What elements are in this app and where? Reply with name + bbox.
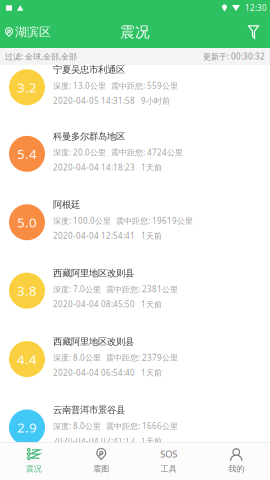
button[interactable]: 3.8	[0, 268, 270, 336]
staticText: 深度: 100.0公里	[53, 215, 111, 226]
staticText: 西藏阿里地区改则县	[53, 336, 134, 347]
staticText: 4.4	[17, 350, 37, 368]
staticText: 震中距您: 4724公里	[111, 147, 183, 158]
staticText: SOS	[160, 448, 177, 460]
staticText: 过滤: 全球,全部,全部	[5, 51, 77, 62]
staticText: 震图	[93, 464, 109, 474]
staticText: 云南普洱市景谷县	[53, 404, 125, 416]
staticText: 阿根廷	[53, 199, 80, 210]
button[interactable]: 湖滨区	[0, 16, 57, 48]
staticText: 1天前	[141, 436, 162, 446]
staticText: 深度: 13.0公里	[53, 80, 106, 91]
staticText: 科曼多尔群岛地区	[53, 131, 125, 142]
staticText: 3.2	[17, 78, 37, 96]
button[interactable]: 震图	[67, 443, 135, 480]
staticText: 2020-04-04 14:18:23	[53, 162, 135, 173]
staticText: 更新于: 00:30:32	[203, 51, 265, 62]
staticText: 1天前	[141, 367, 162, 378]
button[interactable]: 5.4	[0, 131, 270, 199]
button[interactable]: 2.9	[0, 405, 270, 473]
button[interactable]: 筛选	[240, 16, 270, 48]
staticText: 震中距您: 1666公里	[106, 421, 178, 431]
staticText: 3.8	[17, 282, 37, 299]
staticText: 震中距您: 19619公里	[116, 215, 193, 226]
staticText: 深度: 8.0公里	[53, 421, 101, 431]
staticText: 2020-04-04 08:45:50	[53, 299, 135, 309]
staticText: 宁夏吴忠市利通区	[53, 64, 125, 75]
staticText: 5.4	[17, 145, 37, 163]
staticText: 2.9	[17, 419, 37, 436]
staticText: 深度: 8.0公里	[53, 352, 101, 363]
staticText: 西藏阿里地区改则县	[53, 267, 134, 279]
staticText: 12:30	[245, 3, 267, 13]
staticText: 震况	[120, 23, 150, 41]
staticText: 震中距您: 559公里	[111, 80, 178, 91]
staticText: 2020-04-04 02:41:12	[53, 436, 135, 446]
staticText: 震中距您: 2379公里	[106, 352, 178, 363]
button[interactable]: 我的	[202, 443, 270, 480]
staticText: 5.0	[17, 213, 37, 231]
staticText: 工具	[161, 464, 177, 474]
staticText: 2020-04-05 14:31:58	[53, 95, 135, 106]
button[interactable]: SOS	[135, 443, 202, 480]
staticText: 1天前	[141, 162, 162, 173]
staticText: 深度: 7.0公里	[53, 284, 101, 294]
staticText: 2020-04-04 12:54:41	[53, 230, 135, 241]
button[interactable]: 5.0	[0, 199, 270, 268]
staticText: 震况	[26, 464, 42, 474]
staticText: 1天前	[141, 230, 162, 241]
staticText: 震中距您: 2381公里	[106, 284, 178, 294]
button[interactable]: 3.2	[0, 65, 270, 131]
button[interactable]: 4.4	[0, 336, 270, 405]
staticText: 我的	[228, 464, 244, 474]
button[interactable]: 震况	[0, 443, 67, 480]
staticText: 湖滨区	[15, 25, 51, 39]
staticText: 深度: 20.0公里	[53, 147, 106, 158]
staticText: 2020-04-04 06:54:40	[53, 367, 135, 378]
staticText: 1天前	[141, 299, 162, 309]
staticText: 9小时前	[141, 95, 170, 106]
